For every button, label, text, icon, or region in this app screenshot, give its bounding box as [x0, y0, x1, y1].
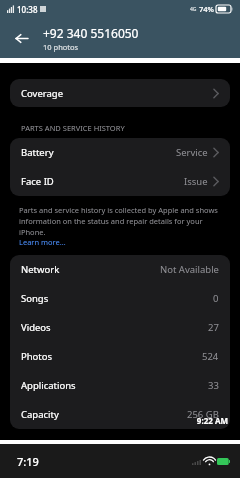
- staticText: PARTS AND SERVICE HISTORY: [21, 123, 125, 133]
- staticText: Battery: [21, 146, 54, 159]
- button[interactable]: Capacity: [10, 400, 230, 429]
- button[interactable]: Back: [10, 27, 32, 49]
- button[interactable]: Learn more…: [19, 237, 66, 247]
- staticText: Service: [176, 146, 208, 159]
- staticText: 256 GB: [187, 408, 219, 421]
- staticText: 10:38: [17, 4, 38, 15]
- staticText: 0: [213, 292, 219, 305]
- staticText: Not Available: [160, 263, 219, 276]
- button[interactable]: Battery: [10, 138, 230, 167]
- staticText: Network: [21, 263, 60, 276]
- staticText: Issue: [184, 175, 208, 188]
- staticText: 10 photos: [43, 42, 79, 52]
- staticText: 27: [208, 321, 219, 334]
- staticText: +92 340 5516050: [43, 25, 139, 41]
- button[interactable]: Applications: [10, 371, 230, 400]
- staticText: 524: [202, 350, 219, 363]
- staticText: Capacity: [21, 408, 59, 421]
- staticText: Coverage: [21, 87, 64, 100]
- staticText: Songs: [21, 292, 49, 305]
- button[interactable]: Face ID: [10, 167, 230, 196]
- button[interactable]: Videos: [10, 313, 230, 342]
- staticText: Parts and service history is collected b…: [19, 205, 221, 237]
- button[interactable]: Coverage: [10, 79, 230, 107]
- staticText: 4G: [190, 6, 197, 13]
- staticText: 7:19: [17, 454, 39, 469]
- staticText: 74%: [199, 4, 214, 14]
- staticText: 9:22 AM: [196, 415, 228, 426]
- staticText: Videos: [21, 321, 51, 334]
- staticText: Face ID: [21, 175, 54, 188]
- staticText: Applications: [21, 379, 76, 392]
- button[interactable]: Songs: [10, 284, 230, 313]
- staticText: Photos: [21, 350, 53, 363]
- button[interactable]: Network: [10, 255, 230, 284]
- button[interactable]: Photos: [10, 342, 230, 371]
- staticText: 33: [208, 379, 219, 392]
